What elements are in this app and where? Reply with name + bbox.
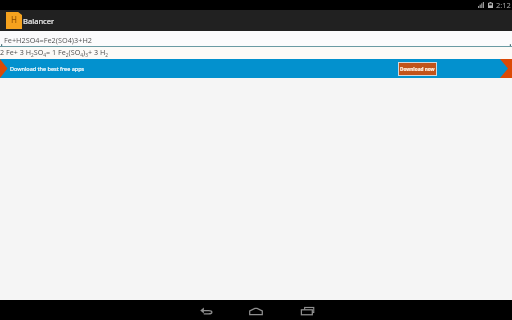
button[interactable]: Recents xyxy=(281,300,331,320)
staticText: H xyxy=(11,14,17,25)
staticText: Download the best free apps xyxy=(10,65,85,72)
button[interactable]: Home xyxy=(231,300,281,320)
staticText: Balancer xyxy=(23,16,55,26)
staticText: Download now xyxy=(400,66,435,72)
staticText: 2:12 xyxy=(496,0,511,10)
staticText: 2 Fe+ 3 H2SO4= 1 Fe2(SO4)3+ 3 H2 xyxy=(0,47,108,59)
button[interactable]: Back xyxy=(181,300,231,320)
button[interactable]: Download now xyxy=(398,62,437,76)
button[interactable]: Download the best free apps xyxy=(0,59,512,78)
staticText: Fe+H2SO4=Fe2(SO4)3+H2 xyxy=(4,35,92,45)
